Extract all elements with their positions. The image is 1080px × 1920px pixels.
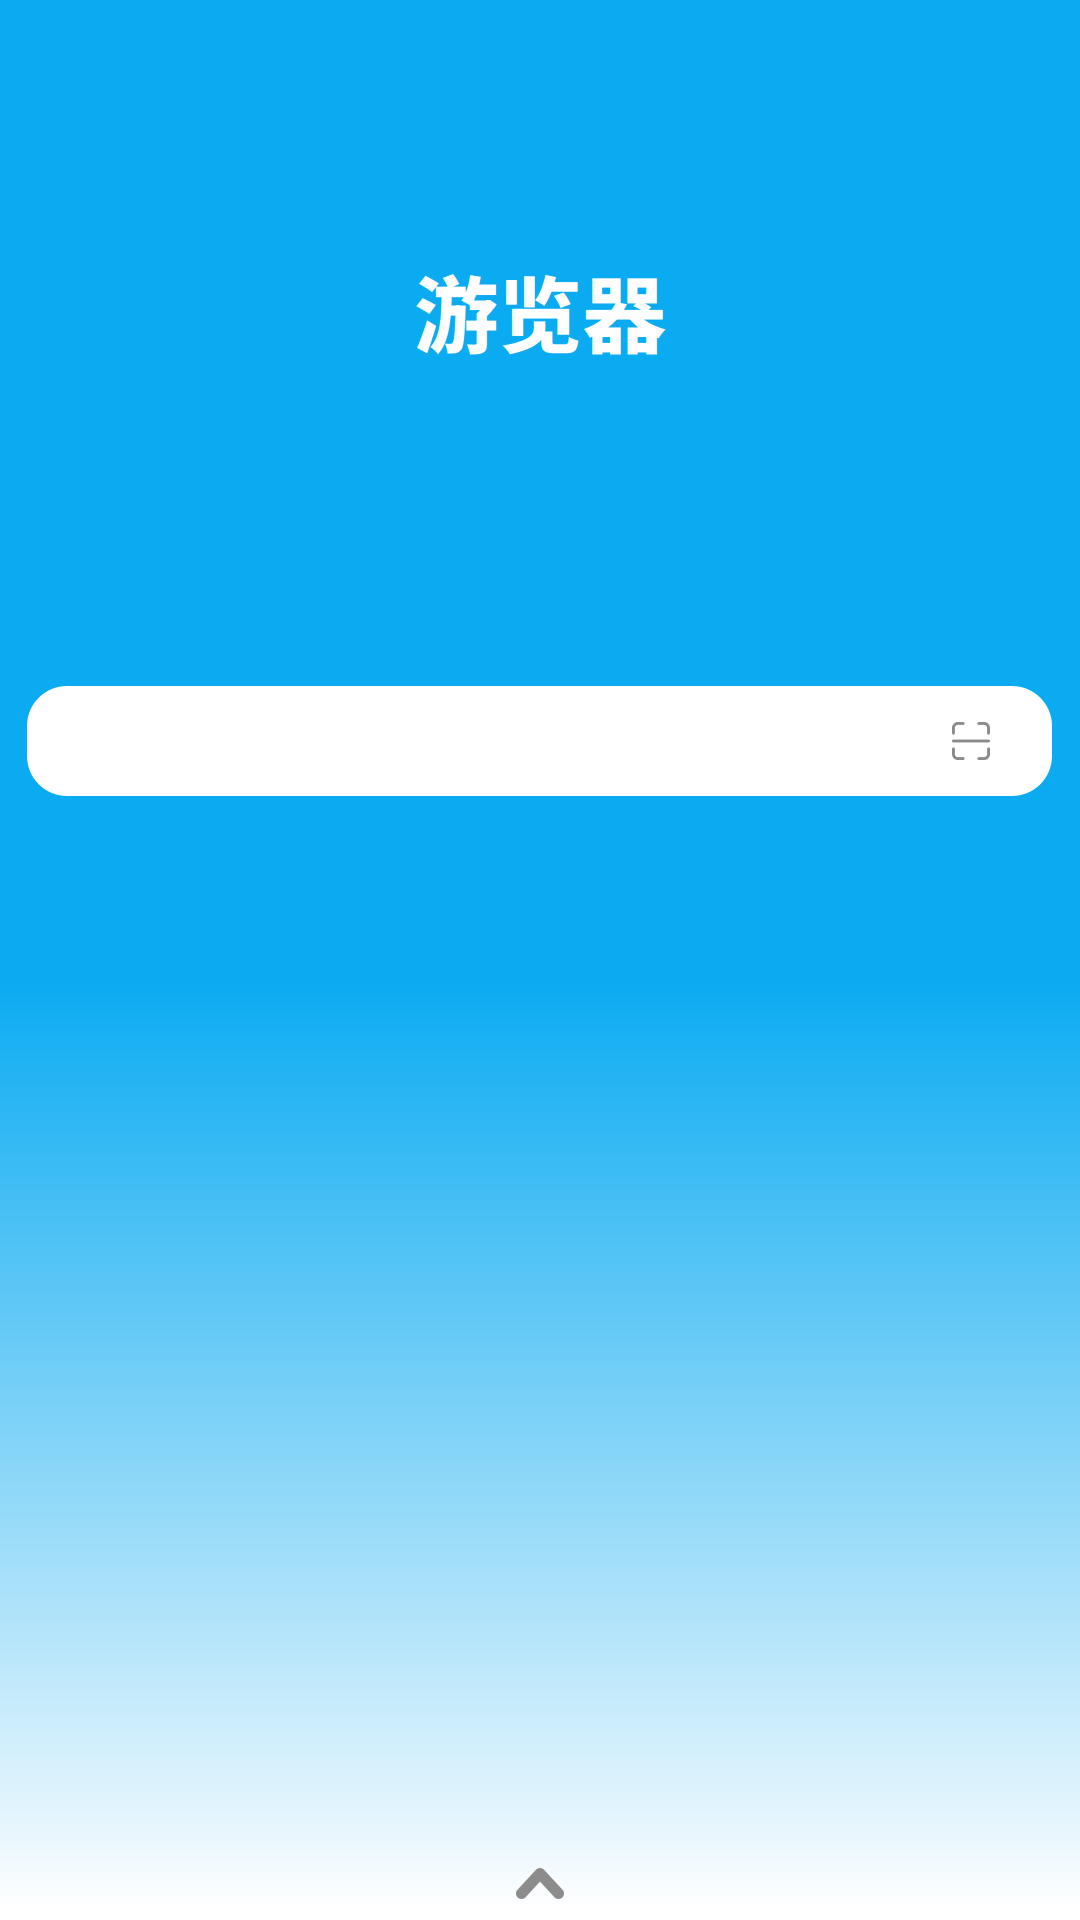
button[interactable]: Search or enter website name — [27, 686, 1052, 796]
staticText: 游览器 — [414, 249, 666, 371]
button[interactable]: Show more — [460, 1868, 620, 1899]
button[interactable]: Scan QR code — [933, 703, 1009, 779]
